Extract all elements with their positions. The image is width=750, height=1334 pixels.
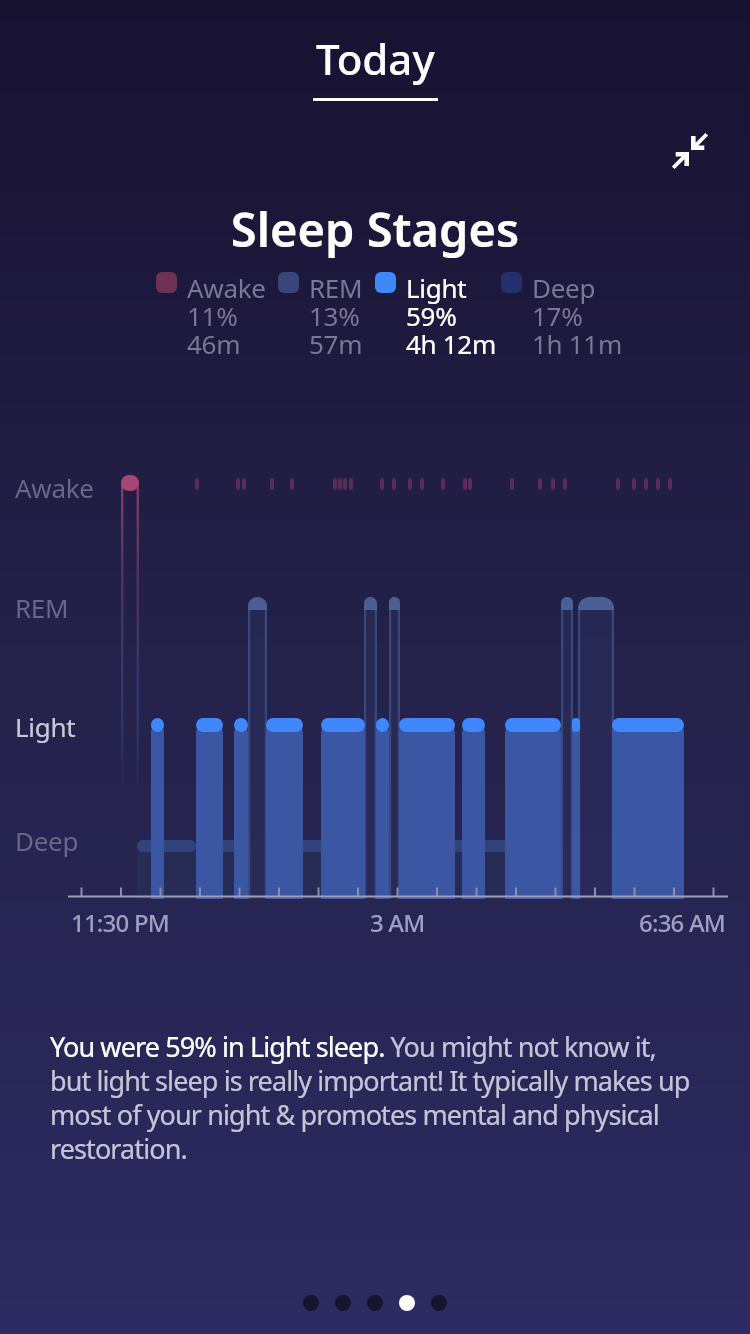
staticText: REM — [15, 590, 69, 625]
staticText: Today — [316, 30, 435, 87]
button[interactable]: Awake 11% 46m — [156, 270, 266, 362]
staticText: 11:30 PM — [71, 906, 169, 939]
staticText: REM 13% 57m — [309, 270, 363, 362]
button[interactable]: Deep 17% 1h 11m — [501, 270, 622, 362]
staticText: 3 AM — [370, 906, 425, 939]
button[interactable] — [303, 1295, 319, 1311]
staticText: Light — [15, 709, 76, 744]
button[interactable]: Today — [313, 30, 438, 101]
button[interactable] — [399, 1295, 415, 1311]
staticText: You were 59% in Light sleep. You might n… — [50, 1028, 750, 1167]
staticText: Awake — [15, 470, 94, 505]
button[interactable] — [431, 1295, 447, 1311]
button[interactable] — [367, 1295, 383, 1311]
staticText: Sleep Stages — [0, 197, 750, 261]
button[interactable]: Light 59% 4h 12m — [375, 270, 496, 362]
staticText: Deep 17% 1h 11m — [532, 270, 622, 362]
staticText: Deep — [15, 823, 79, 858]
button[interactable] — [335, 1295, 351, 1311]
staticText: Light 59% 4h 12m — [406, 270, 496, 362]
staticText: 6:36 AM — [639, 906, 726, 939]
staticText: Awake 11% 46m — [187, 270, 266, 362]
button[interactable] — [668, 128, 714, 174]
button[interactable]: REM 13% 57m — [278, 270, 363, 362]
